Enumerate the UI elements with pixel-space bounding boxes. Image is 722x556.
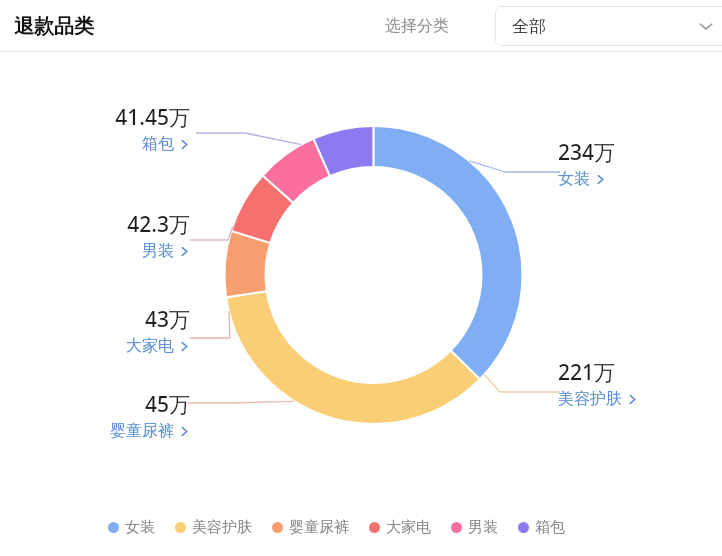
staticText: 婴童尿裤 (289, 518, 349, 537)
staticText: 退款品类 (14, 14, 94, 39)
other: 查看男装 (179, 246, 190, 257)
button[interactable]: 女装 (108, 518, 155, 537)
button[interactable]: 大家电 (369, 518, 431, 537)
button[interactable]: 男装 (451, 518, 498, 537)
staticText: 男装 (468, 518, 498, 537)
staticText: 大家电 (126, 336, 174, 356)
staticText: 45万 (144, 390, 190, 419)
button[interactable]: 234万 (558, 138, 653, 189)
staticText: 婴童尿裤 (110, 421, 174, 441)
button[interactable]: 美容护肤 (175, 518, 252, 537)
button[interactable]: 41.45万 (95, 103, 190, 154)
button[interactable]: 43万 (103, 305, 190, 356)
other: 查看大家电 (179, 341, 190, 352)
staticText: 42.3万 (127, 210, 190, 239)
staticText: 221万 (558, 358, 616, 387)
other: 查看女装 (595, 174, 606, 185)
staticText: 女装 (125, 518, 155, 537)
staticText: 美容护肤 (558, 389, 622, 409)
button[interactable]: 箱包 (518, 518, 565, 537)
button[interactable]: 42.3万 (103, 210, 190, 261)
staticText: 43万 (144, 305, 190, 334)
button[interactable]: 婴童尿裤 (272, 518, 349, 537)
staticText: 箱包 (535, 518, 565, 537)
staticText: 男装 (142, 241, 174, 261)
button[interactable]: 221万 (558, 358, 668, 409)
button[interactable]: 45万 (82, 390, 190, 441)
staticText: 234万 (558, 138, 616, 167)
staticText: 全部 (512, 16, 546, 37)
button[interactable]: 全部 (495, 6, 722, 46)
staticText: 女装 (558, 169, 590, 189)
staticText: 选择分类 (385, 16, 449, 36)
staticText: 大家电 (386, 518, 431, 537)
staticText: 美容护肤 (192, 518, 252, 537)
other: 查看婴童尿裤 (179, 426, 190, 437)
other: 查看箱包 (179, 139, 190, 150)
other: 查看美容护肤 (627, 394, 638, 405)
staticText: 箱包 (142, 134, 174, 154)
staticText: 41.45万 (115, 103, 190, 132)
